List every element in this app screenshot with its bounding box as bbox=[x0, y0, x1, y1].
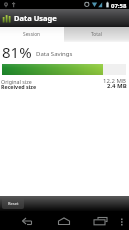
button[interactable]: Home bbox=[54, 211, 74, 230]
staticText: 12.2 MB bbox=[103, 77, 126, 85]
staticText: 07:58 bbox=[111, 2, 127, 10]
button[interactable]: Total bbox=[64, 27, 129, 42]
button[interactable]: Back bbox=[17, 211, 37, 230]
button[interactable]: Session bbox=[0, 27, 64, 42]
button[interactable]: Recent apps bbox=[91, 211, 111, 230]
staticText: Reset bbox=[8, 201, 19, 206]
staticText: 81% bbox=[2, 42, 32, 62]
staticText: Session bbox=[23, 31, 41, 38]
staticText: 2.4 MB bbox=[107, 82, 127, 90]
staticText: Received size bbox=[1, 83, 37, 90]
staticText: Data Usage bbox=[14, 13, 57, 23]
button[interactable]: More options bbox=[118, 211, 126, 230]
staticText: Data Savings bbox=[36, 50, 73, 58]
button[interactable]: Reset bbox=[2, 198, 24, 209]
staticText: Original size bbox=[1, 78, 32, 85]
staticText: Total bbox=[91, 31, 102, 38]
